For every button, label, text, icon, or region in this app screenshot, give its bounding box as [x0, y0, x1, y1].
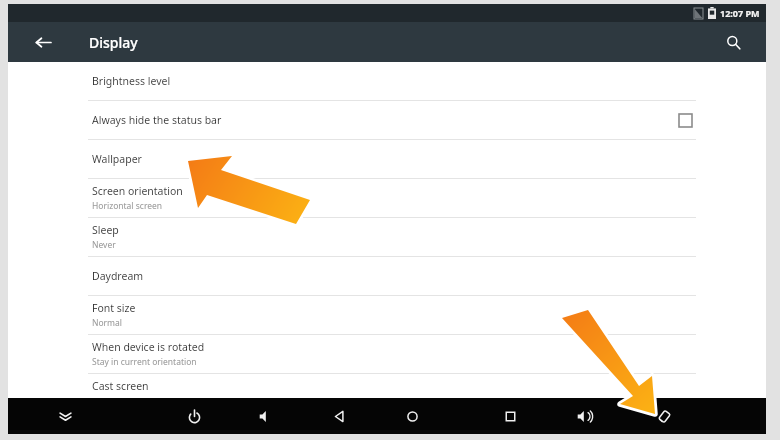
button[interactable]: Hide navigation bar: [50, 401, 80, 431]
button[interactable]: Screen orientation: [8, 179, 766, 217]
staticText: Cast screen: [92, 379, 149, 393]
staticText: Screen orientation: [92, 184, 183, 198]
staticText: Stay in current orientation: [92, 356, 197, 368]
button[interactable]: Search: [718, 27, 748, 57]
button[interactable]: Toggle always hide the status bar: [674, 109, 696, 131]
button[interactable]: Wallpaper: [8, 140, 766, 178]
staticText: Brightness level: [92, 74, 171, 88]
button[interactable]: Always hide the status bar: [8, 101, 766, 139]
button[interactable]: Rotate screen: [649, 401, 679, 431]
staticText: Sleep: [92, 223, 119, 237]
button[interactable]: Volume down: [251, 401, 281, 431]
staticText: Normal: [92, 317, 123, 329]
staticText: Wallpaper: [92, 152, 142, 166]
staticText: Font size: [92, 301, 136, 315]
staticText: Horizontal screen: [92, 200, 163, 212]
staticText: When device is rotated: [92, 340, 205, 354]
button[interactable]: Power: [179, 401, 209, 431]
staticText: Never: [92, 239, 116, 251]
button[interactable]: When device is rotated: [8, 335, 766, 373]
button[interactable]: Daydream: [8, 257, 766, 295]
button[interactable]: Volume up: [569, 401, 599, 431]
button[interactable]: Cast screen: [8, 374, 766, 398]
button[interactable]: Brightness level: [8, 62, 766, 100]
button[interactable]: Back: [324, 401, 354, 431]
button[interactable]: Home: [397, 401, 427, 431]
staticText: Always hide the status bar: [92, 113, 222, 127]
staticText: Display: [89, 33, 138, 52]
button[interactable]: Sleep: [8, 218, 766, 256]
staticText: 12:07 PM: [720, 7, 760, 19]
button[interactable]: Back: [28, 27, 58, 57]
staticText: Daydream: [92, 269, 144, 283]
button[interactable]: Font size: [8, 296, 766, 334]
button[interactable]: Recent apps: [495, 401, 525, 431]
